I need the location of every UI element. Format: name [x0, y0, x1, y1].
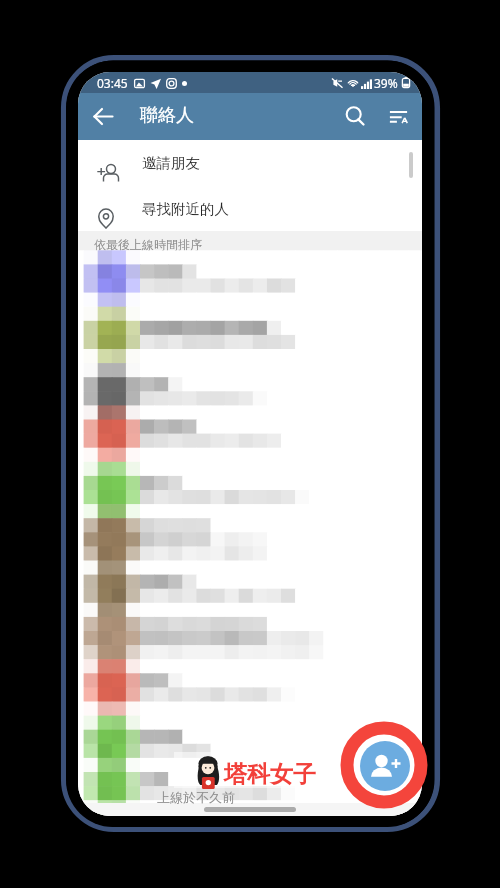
- button[interactable]: 邀請朋友: [78, 140, 422, 186]
- staticText: 邀請朋友: [142, 154, 200, 172]
- staticText: 塔科女子: [224, 760, 316, 789]
- button[interactable]: Back: [80, 93, 127, 140]
- staticText: 依最後上線時間排序: [94, 237, 202, 252]
- staticText: 上線於不久前: [157, 789, 235, 805]
- staticText: 39%: [374, 75, 398, 91]
- button[interactable]: 尋找附近的人: [78, 186, 422, 231]
- button[interactable]: Add contact: [360, 741, 410, 791]
- staticText: 聯絡人: [140, 104, 194, 127]
- button[interactable]: Search: [332, 93, 379, 140]
- staticText: 03:45: [97, 75, 128, 91]
- staticText: 尋找附近的人: [142, 200, 229, 218]
- button[interactable]: Sort: [375, 93, 422, 140]
